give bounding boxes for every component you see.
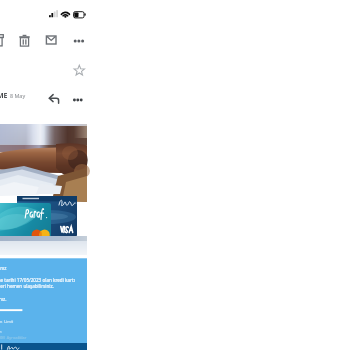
button[interactable]: Reply bbox=[48, 93, 60, 105]
staticText: 8 May bbox=[10, 92, 26, 99]
staticText: ME bbox=[0, 91, 8, 101]
staticText: nız. bbox=[0, 296, 7, 302]
button[interactable]: Star bbox=[73, 64, 86, 77]
button[interactable]: Email content bbox=[0, 259, 87, 342]
staticText: KM Ayrıcalıklar bbox=[0, 335, 27, 340]
staticText: ın Limit bbox=[0, 319, 14, 324]
button[interactable]: Archive bbox=[0, 34, 4, 47]
button[interactable]: Delete bbox=[19, 34, 30, 45]
button[interactable]: Mark unread bbox=[46, 35, 56, 45]
staticText: rı bbox=[0, 329, 2, 334]
staticText: ödeme tarihi 17/05/2023 olan kredi kartı bbox=[0, 277, 75, 283]
staticText: arivleri hemen ulaşabilirsiniz. bbox=[0, 283, 54, 289]
button[interactable]: More options bbox=[74, 35, 85, 46]
staticText: ınız bbox=[0, 265, 7, 271]
button[interactable]: More bbox=[73, 93, 84, 104]
